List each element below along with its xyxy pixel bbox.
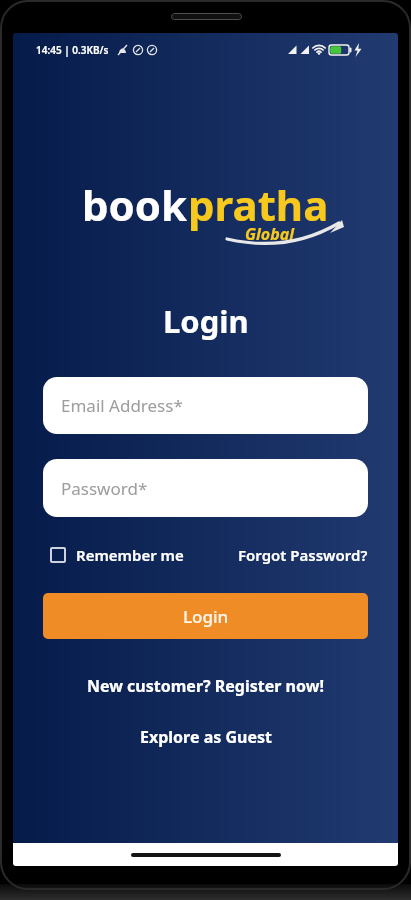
button[interactable]: Password* (43, 459, 368, 517)
button[interactable]: Remember me (50, 545, 184, 565)
button[interactable]: Login (43, 593, 368, 639)
button[interactable]: Email Address* (43, 377, 368, 434)
staticText: pratha (188, 176, 329, 233)
staticText: Remember me (76, 545, 184, 565)
button[interactable]: New customer? Register now! (87, 675, 324, 697)
button[interactable] (13, 843, 398, 866)
staticText: Login (163, 300, 249, 342)
staticText: Login (183, 605, 229, 628)
button[interactable]: Forgot Password? (238, 545, 368, 565)
staticText: book (82, 176, 188, 233)
staticText: Password* (61, 477, 148, 500)
button[interactable]: Explore as Guest (140, 726, 272, 748)
staticText: 14:45 | 0.3KB/s (36, 43, 109, 57)
staticText: Global (245, 223, 294, 245)
staticText: Email Address* (61, 394, 183, 417)
